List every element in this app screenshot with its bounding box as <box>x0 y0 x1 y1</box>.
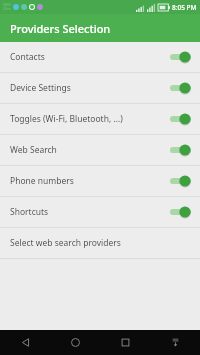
button[interactable]: Shortcuts <box>0 197 200 228</box>
staticText: Contacts <box>10 51 45 63</box>
staticText: Providers Selection <box>10 21 111 36</box>
staticText: 8:05 PM <box>172 3 197 12</box>
button[interactable]: Select web search providers <box>0 228 200 259</box>
button[interactable]: Toggle on <box>170 206 191 218</box>
staticText: Shortcuts <box>10 206 49 218</box>
button[interactable]: Phone numbers <box>0 166 200 197</box>
staticText: Select web search providers <box>10 237 121 249</box>
button[interactable]: Recent apps <box>100 330 150 355</box>
staticText: DING VOne <box>3 3 11 11</box>
button[interactable]: Device Settings <box>0 73 200 104</box>
button[interactable]: Home <box>50 330 100 355</box>
button[interactable]: Toggles (Wi-Fi, Bluetooth, …) <box>0 104 200 135</box>
staticText: Web Search <box>10 144 57 156</box>
button[interactable]: Toggle on <box>170 82 191 94</box>
button[interactable]: Toggle on <box>170 144 191 156</box>
button[interactable]: Toggle on <box>170 175 191 187</box>
button[interactable]: Toggle on <box>170 51 191 63</box>
button[interactable]: Back <box>0 330 50 355</box>
button[interactable]: Web Search <box>0 135 200 166</box>
staticText: Phone numbers <box>10 175 74 187</box>
button[interactable]: Hide keyboard <box>150 330 200 355</box>
button[interactable]: Toggle on <box>170 113 191 125</box>
staticText: Device Settings <box>10 82 71 94</box>
button[interactable]: Contacts <box>0 42 200 73</box>
staticText: Toggles (Wi-Fi, Bluetooth, …) <box>10 113 123 125</box>
